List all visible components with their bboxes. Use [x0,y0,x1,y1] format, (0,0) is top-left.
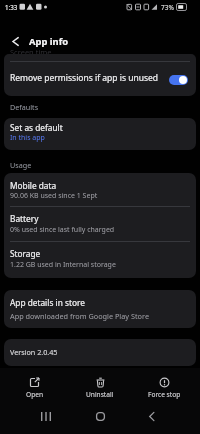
staticText: App downloaded from Google Play Store [10,311,149,321]
staticText: Open [26,390,43,399]
staticText: Usage [10,160,32,170]
staticText: Set as default [10,122,63,133]
button[interactable] [90,406,110,426]
staticText: Mobile data [10,180,57,191]
button[interactable]: Set as default [4,118,196,150]
staticText: 73% [161,3,174,12]
button[interactable]: Battery [4,207,196,241]
staticText: App info [29,35,69,48]
staticText: Defaults [10,102,39,112]
button[interactable]: Storage [4,242,196,278]
button[interactable]: Uninstall [70,372,130,402]
staticText: Version 2.0.45 [10,347,58,357]
button[interactable] [6,32,24,50]
button[interactable]: Remove permissions if app is unused [4,54,196,96]
staticText: App details in store [10,297,85,308]
staticText: Remove permissions if app is unused [10,72,159,84]
staticText: Storage [10,248,41,259]
staticText: In this app [10,133,45,143]
staticText: Force stop [148,390,181,399]
staticText: Battery [10,213,39,224]
button[interactable]: App details in store [4,290,196,328]
staticText: Screen time [10,47,52,57]
staticText: 0% used since last fully charged [10,225,115,235]
staticText: Uninstall [86,390,114,399]
staticText: 1.22 GB used in Internal storage [10,260,116,270]
button[interactable] [142,406,162,426]
staticText: 90.06 KB used since 1 Sept [10,191,98,201]
staticText: 1:33 [5,3,18,11]
button[interactable]: Force stop [134,372,194,402]
button[interactable]: Open [4,372,64,402]
button[interactable]: Mobile data [4,173,196,206]
button[interactable] [36,406,56,426]
